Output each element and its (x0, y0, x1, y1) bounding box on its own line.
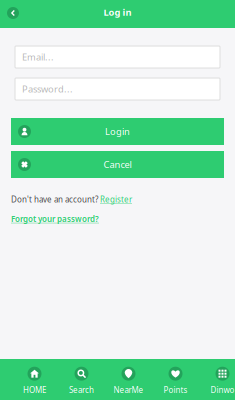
button[interactable]: Login (11, 118, 224, 145)
button[interactable]: Points (152, 357, 199, 400)
button[interactable]: Register (100, 194, 132, 205)
button[interactable]: Forgot your password? (11, 214, 99, 224)
staticText: Dinwo (210, 385, 234, 395)
staticText: Points (163, 385, 187, 395)
staticText: Search (69, 385, 94, 395)
staticText: Login (105, 125, 130, 138)
button[interactable]: Search (58, 357, 105, 400)
staticText: Email... (22, 51, 54, 63)
button[interactable]: NearMe (105, 357, 152, 400)
staticText: Don't have an account? (11, 194, 100, 205)
staticText: Log in (103, 6, 131, 18)
button[interactable]: Dinwo (199, 357, 235, 400)
button[interactable]: HOME (11, 357, 58, 400)
staticText: Forgot your password? (11, 214, 99, 224)
staticText: Cancel (103, 158, 131, 171)
button[interactable]: Cancel (11, 151, 224, 178)
staticText: Register (100, 194, 132, 205)
staticText: HOME (23, 385, 46, 395)
button[interactable]: Back (0, 3, 23, 23)
staticText: Password... (22, 83, 73, 95)
staticText: NearMe (113, 385, 143, 395)
